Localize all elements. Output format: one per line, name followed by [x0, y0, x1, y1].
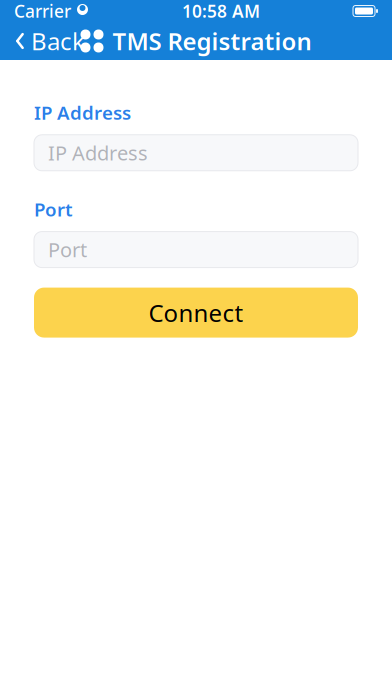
staticText: IP Address [34, 100, 131, 125]
staticText: Connect [148, 297, 243, 328]
button[interactable]: IP Address [34, 135, 358, 171]
staticText: IP Address [48, 139, 148, 166]
staticText: Port [34, 197, 73, 222]
staticText: Back [31, 25, 85, 57]
button[interactable]: Port [34, 232, 358, 268]
button[interactable]: Back [0, 22, 95, 60]
staticText: Port [48, 236, 87, 263]
staticText: 10:58 AM [182, 0, 260, 22]
button[interactable]: Connect [34, 288, 358, 338]
staticText: TMS Registration [112, 25, 311, 57]
staticText: Carrier [14, 0, 71, 22]
